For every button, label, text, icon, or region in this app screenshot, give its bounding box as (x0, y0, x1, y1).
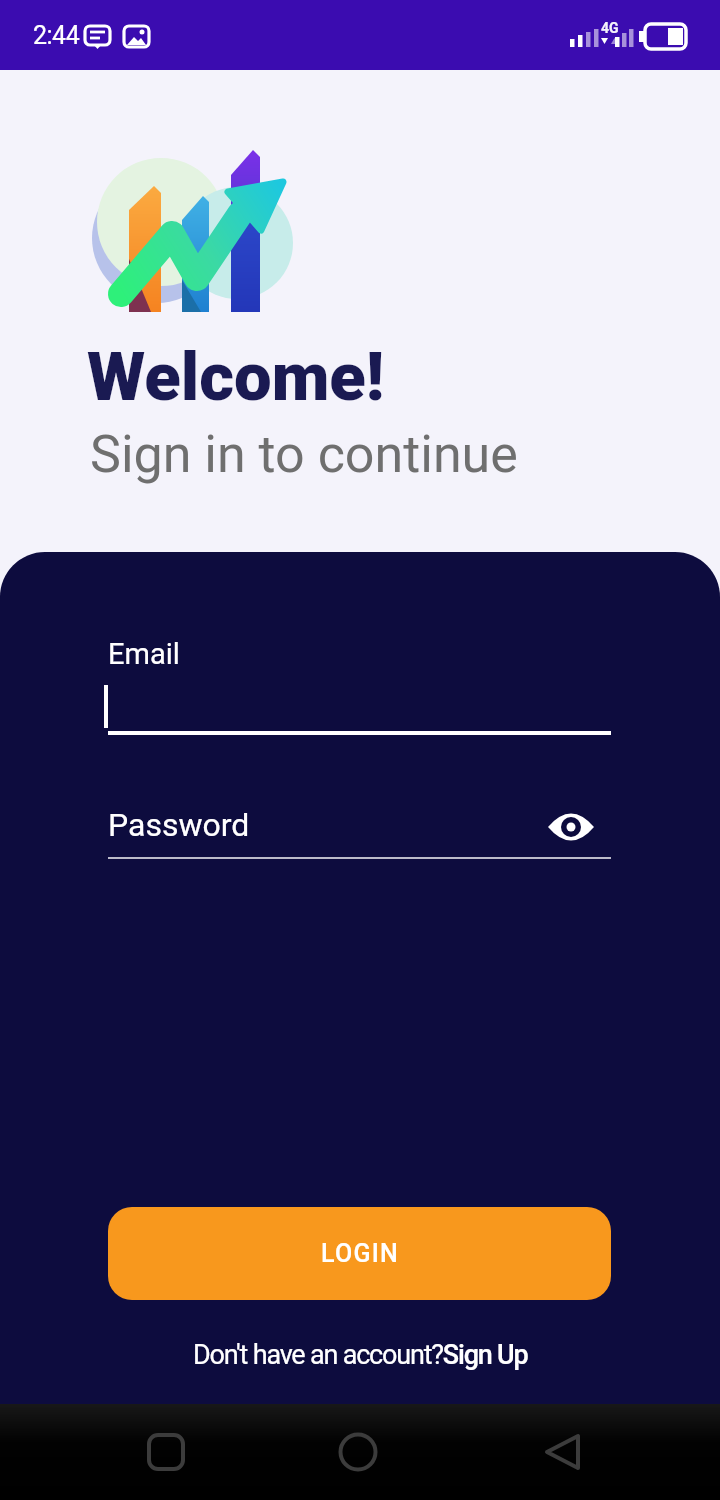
staticText: Welcome! (87, 338, 385, 417)
button[interactable]: LOGIN (108, 1207, 611, 1300)
button[interactable]: Don't have an account?Sign Up (0, 1339, 720, 1371)
button[interactable] (131, 1417, 201, 1487)
staticText: Sign in to continue (90, 424, 518, 485)
button[interactable] (323, 1417, 393, 1487)
staticText: Password (108, 806, 250, 844)
staticText: LOGIN (321, 1239, 399, 1268)
staticText: 4G (601, 20, 619, 36)
staticText: 2:44 (33, 21, 80, 50)
button[interactable] (527, 1417, 597, 1487)
staticText: Email (108, 637, 180, 671)
button[interactable] (548, 811, 594, 843)
staticText: Don't have an account?Sign Up (193, 1339, 528, 1371)
